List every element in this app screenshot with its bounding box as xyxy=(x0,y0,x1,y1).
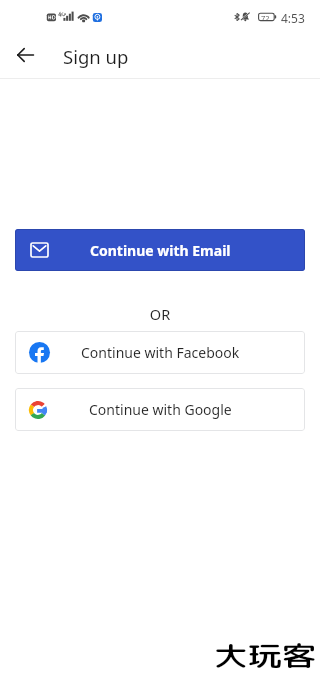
button[interactable]: Continue with Google xyxy=(15,388,305,431)
staticText: Continue with Facebook xyxy=(81,343,240,362)
staticText: Sign up xyxy=(63,44,129,69)
button[interactable]: Back xyxy=(5,35,45,75)
button[interactable]: Continue with Email xyxy=(15,229,305,271)
button[interactable]: Continue with Facebook xyxy=(15,331,305,374)
staticText: 4:53 xyxy=(281,10,305,26)
staticText: Continue with Email xyxy=(90,241,231,260)
staticText: 72 xyxy=(261,13,270,23)
staticText: OR xyxy=(0,304,320,324)
staticText: Continue with Google xyxy=(89,400,232,419)
staticText: 大玩客 xyxy=(214,637,316,674)
